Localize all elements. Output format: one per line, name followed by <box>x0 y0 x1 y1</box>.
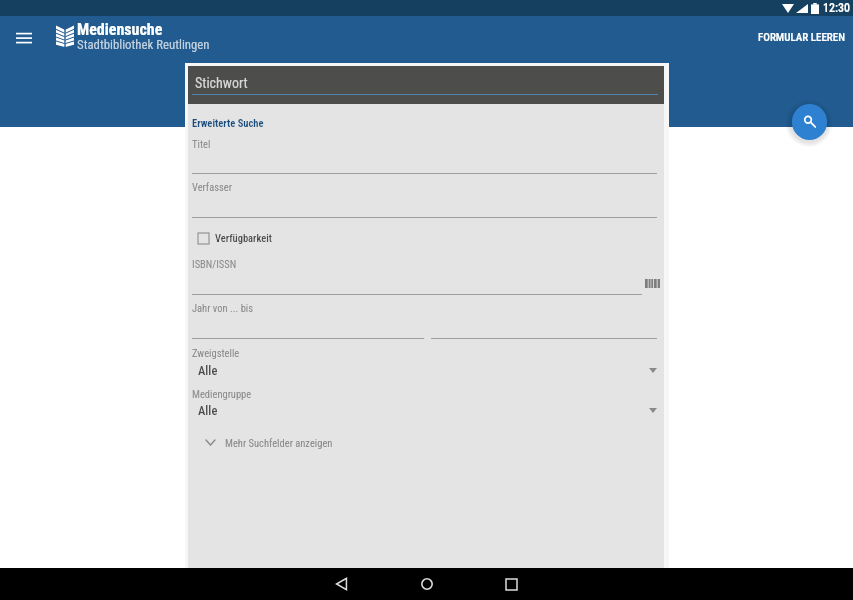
staticText: Alle <box>198 403 218 417</box>
staticText: Verfügbarkeit <box>215 232 272 244</box>
staticText: Mediensuche <box>77 20 163 39</box>
button[interactable]: Alle <box>192 363 657 377</box>
button[interactable]: FORMULAR LEEREN <box>750 23 853 51</box>
button[interactable]: Verfügbarkeit <box>198 232 272 244</box>
staticText: FORMULAR LEEREN <box>758 31 846 44</box>
staticText: Zweigstelle <box>192 347 240 359</box>
staticText: 12:30 <box>823 1 851 15</box>
button[interactable]: Search <box>792 104 827 140</box>
staticText: Verfasser <box>192 181 232 193</box>
button[interactable]: Mehr Suchfelder anzeigen <box>206 436 333 449</box>
button[interactable]: Open navigation menu <box>8 21 40 53</box>
staticText: Jahr von ... bis <box>192 302 254 314</box>
staticText: Mehr Suchfelder anzeigen <box>225 437 333 449</box>
staticText: Erweiterte Suche <box>192 117 264 129</box>
button[interactable]: Home <box>384 568 469 600</box>
staticText: Mediengruppe <box>192 388 252 400</box>
button[interactable]: Alle <box>192 403 657 417</box>
staticText: Alle <box>198 363 218 377</box>
staticText: Titel <box>192 138 211 150</box>
button[interactable]: Recent apps <box>469 568 554 600</box>
staticText: ISBN/ISSN <box>192 258 237 270</box>
staticText: Stadtbibliothek Reutlingen <box>77 37 210 52</box>
button[interactable]: Back <box>299 568 384 600</box>
staticText: Stichwort <box>195 75 248 91</box>
